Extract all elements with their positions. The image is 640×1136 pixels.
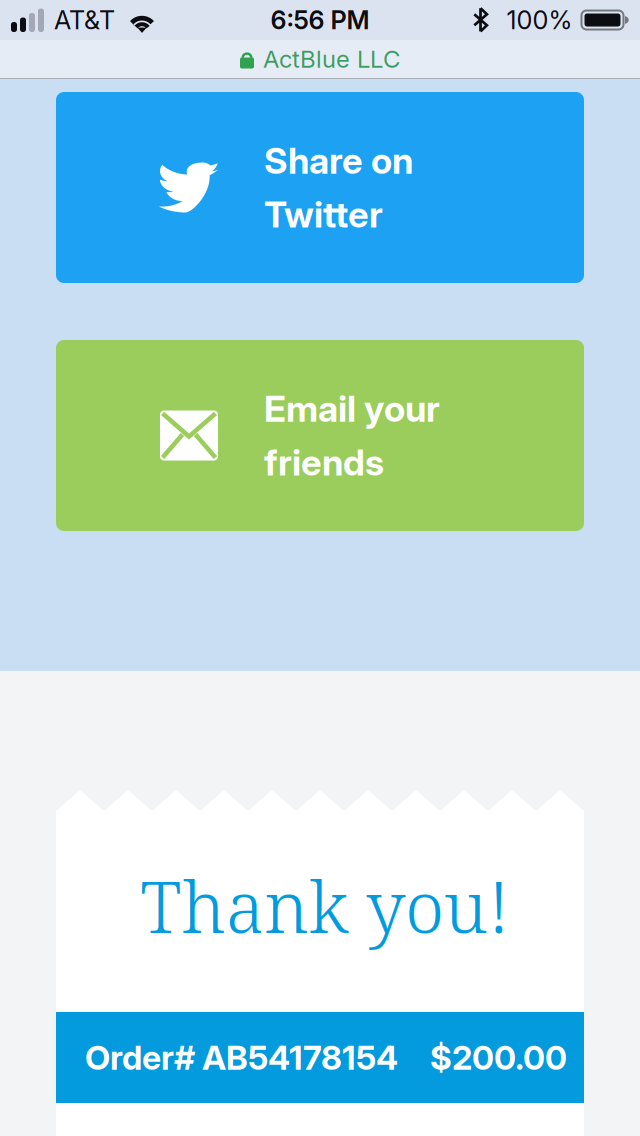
staticText: AT&T [54, 5, 115, 35]
staticText: Order# AB54178154 [85, 1037, 398, 1078]
staticText: friends [264, 440, 384, 484]
staticText: Share on [264, 139, 413, 182]
staticText: 100% [506, 5, 572, 35]
staticText: Email your [264, 387, 440, 430]
staticText: Thank you! [140, 857, 510, 954]
button[interactable]: Email your friends [56, 340, 584, 531]
staticText: Twitter [264, 192, 383, 236]
staticText: ActBlue LLC [263, 44, 400, 73]
staticText: 6:56 PM [270, 5, 369, 35]
staticText: $200.00 [430, 1037, 567, 1078]
button[interactable]: Address: ActBlue LLC [0, 40, 640, 78]
button[interactable]: Share on Twitter [56, 92, 584, 283]
